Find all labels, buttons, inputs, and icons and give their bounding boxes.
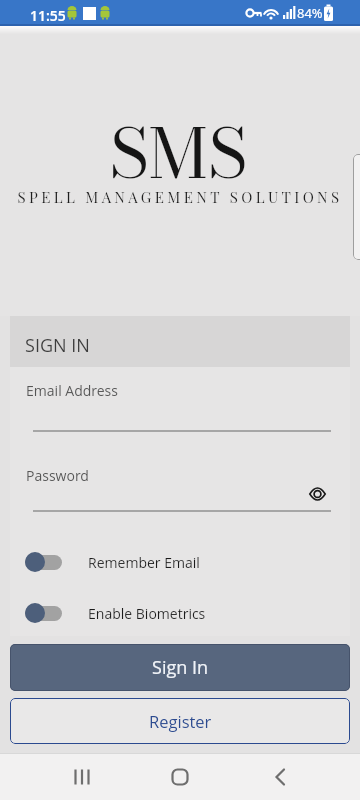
staticText: SIGN IN bbox=[25, 333, 90, 358]
button[interactable]: Remember Email bbox=[25, 548, 200, 576]
staticText: 11:55 bbox=[30, 6, 66, 25]
staticText: 84% bbox=[297, 4, 323, 22]
staticText: Remember Email bbox=[88, 553, 200, 572]
button[interactable] bbox=[264, 761, 296, 793]
staticText: SMS bbox=[109, 101, 247, 181]
staticText: Enable Biometrics bbox=[88, 604, 206, 623]
button[interactable] bbox=[14, 372, 346, 434]
button[interactable] bbox=[164, 761, 196, 793]
button[interactable]: Sign In bbox=[10, 644, 350, 691]
staticText: Sign In bbox=[152, 655, 209, 680]
staticText: Register bbox=[149, 710, 212, 732]
button[interactable]: Register bbox=[10, 698, 350, 744]
button[interactable] bbox=[353, 154, 360, 260]
staticText: SPELL MANAGEMENT SOLUTIONS bbox=[17, 187, 343, 207]
button[interactable]: Enable Biometrics bbox=[25, 599, 206, 627]
button[interactable] bbox=[14, 452, 346, 514]
button[interactable] bbox=[66, 761, 98, 793]
button[interactable] bbox=[303, 480, 331, 508]
staticText: Password bbox=[26, 466, 89, 485]
staticText: Email Address bbox=[26, 381, 118, 400]
